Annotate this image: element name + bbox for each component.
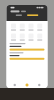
button[interactable]: Category: [9, 33, 17, 41]
button[interactable]: Category: [27, 23, 35, 31]
button[interactable]: Orders: [23, 82, 31, 87]
button[interactable]: Category: [9, 23, 17, 31]
button[interactable]: Profile: [35, 82, 43, 87]
button[interactable]: Category: [18, 33, 26, 41]
button[interactable]: Home: [11, 82, 19, 87]
button[interactable]: Category: [36, 33, 44, 41]
button[interactable]: Category: [27, 33, 35, 41]
button[interactable]: Category: [36, 23, 44, 31]
button[interactable]: Category: [18, 23, 26, 31]
